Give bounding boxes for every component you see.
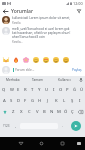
button[interactable]: O: [57, 84, 64, 95]
staticText: E: [17, 87, 20, 93]
button[interactable]: D: [15, 95, 22, 106]
button[interactable]: G: [29, 95, 36, 106]
button[interactable]: C: [25, 106, 33, 118]
button[interactable]: Ç: [69, 106, 76, 118]
button[interactable]: Z: [9, 106, 17, 118]
button[interactable]: melli_uzel/Sonuchood ei uzel lorem gok k…: [0, 27, 85, 44]
button[interactable]: Ğ: [71, 84, 78, 95]
button[interactable]: Back: [1, 7, 9, 15]
button[interactable]: K: [52, 95, 60, 106]
staticText: Ü: [80, 87, 84, 93]
button[interactable]: T: [29, 84, 36, 95]
staticText: K: [55, 98, 58, 104]
button[interactable]: R: [22, 84, 29, 95]
staticText: Y: [38, 87, 41, 93]
staticText: Yanıtla...: [12, 40, 23, 44]
button[interactable]: F: [22, 95, 29, 106]
button[interactable]: Merhaba: [0, 76, 25, 84]
staticText: ,: [15, 123, 17, 128]
button[interactable]: Tamam: [25, 76, 51, 84]
staticText: Q: [2, 87, 6, 93]
button[interactable]: X: [17, 106, 25, 118]
staticText: A: [3, 98, 6, 104]
button[interactable]: Paylaş: [71, 67, 83, 73]
button[interactable]: Y: [36, 84, 43, 95]
button[interactable]: P: [64, 84, 71, 95]
button[interactable]: Recents: [58, 139, 67, 148]
staticText: X: [20, 109, 23, 115]
staticText: U: [45, 87, 49, 93]
button[interactable]: Q: [0, 84, 8, 95]
button[interactable]: Ü: [78, 84, 85, 95]
staticText: T: [31, 87, 34, 93]
staticText: Ş: [71, 98, 74, 104]
staticText: .: [62, 123, 64, 128]
staticText: 12:00: [73, 1, 83, 6]
button[interactable]: E: [15, 84, 22, 95]
staticText: C: [28, 109, 31, 115]
button[interactable]: Filter: [75, 7, 83, 15]
button[interactable]: N: [48, 106, 55, 118]
button[interactable]: I: [76, 95, 84, 106]
button[interactable]: Kullanıcı: [51, 76, 77, 84]
button[interactable]: L: [60, 95, 68, 106]
button[interactable]: Ö: [62, 106, 69, 118]
staticText: B: [43, 109, 46, 115]
button[interactable]: ?123: [0, 118, 12, 133]
button[interactable]: Celebrate: [1, 55, 11, 64]
button[interactable]: Voice input: [77, 76, 85, 84]
staticText: Yorumlar: [11, 8, 34, 15]
staticText: H: [38, 98, 42, 104]
staticText: Merhaba: [6, 78, 20, 82]
staticText: L: [63, 98, 66, 104]
button[interactable]: Home: [37, 139, 46, 148]
button[interactable]: W: [8, 84, 15, 95]
button[interactable]: V: [33, 106, 41, 118]
staticText: O: [59, 87, 63, 93]
button[interactable]: Back: [16, 139, 25, 148]
staticText: Yorum ekle...: [15, 68, 35, 72]
button[interactable]: J: [44, 95, 52, 106]
staticText: Tamam: [32, 78, 44, 82]
button[interactable]: Smile: [31, 55, 41, 64]
staticText: ?123: [3, 124, 10, 128]
button[interactable]: kullaniciadi Lorem ipsum dolor sit amet,…: [0, 16, 85, 25]
staticText: I: [53, 87, 55, 93]
button[interactable]: U: [43, 84, 50, 95]
button[interactable]: Backspace: [76, 106, 85, 118]
staticText: Ç: [71, 109, 74, 115]
button[interactable]: Fire: [11, 55, 21, 64]
button[interactable]: H: [36, 95, 44, 106]
staticText: P: [66, 87, 69, 93]
staticText: Z: [12, 109, 15, 115]
staticText: Ğ: [73, 87, 77, 93]
staticText: Kullanıcı: [58, 78, 71, 82]
button[interactable]: Send: [71, 121, 81, 131]
staticText: J: [47, 98, 49, 104]
staticText: S: [10, 98, 13, 104]
staticText: D: [17, 98, 21, 104]
staticText: M: [57, 109, 61, 115]
button[interactable]: Ş: [68, 95, 76, 106]
button[interactable]: Flower: [21, 55, 31, 64]
button[interactable]: I: [50, 84, 57, 95]
staticText: Paylaş: [72, 68, 82, 72]
staticText: W: [10, 87, 14, 93]
button[interactable]: Shift: [0, 106, 9, 118]
staticText: F: [24, 98, 27, 104]
button[interactable]: ,: [12, 118, 20, 133]
button[interactable]: B: [41, 106, 48, 118]
staticText: kullaniciadi Lorem ipsum dolor sit amet,…: [12, 16, 84, 20]
button[interactable]: S: [8, 95, 15, 106]
button[interactable]: M: [55, 106, 62, 118]
button[interactable]: Love: [41, 55, 51, 64]
staticText: R: [24, 87, 27, 93]
button[interactable]: Laugh: [51, 55, 61, 64]
button[interactable]: Change keyboard: [74, 139, 83, 148]
button[interactable]: Wow: [61, 55, 71, 64]
staticText: melli_uzel/Sonuchood ei uzel lorem gok k…: [12, 27, 72, 39]
staticText: I: [79, 98, 81, 104]
button[interactable]: A: [1, 95, 8, 106]
